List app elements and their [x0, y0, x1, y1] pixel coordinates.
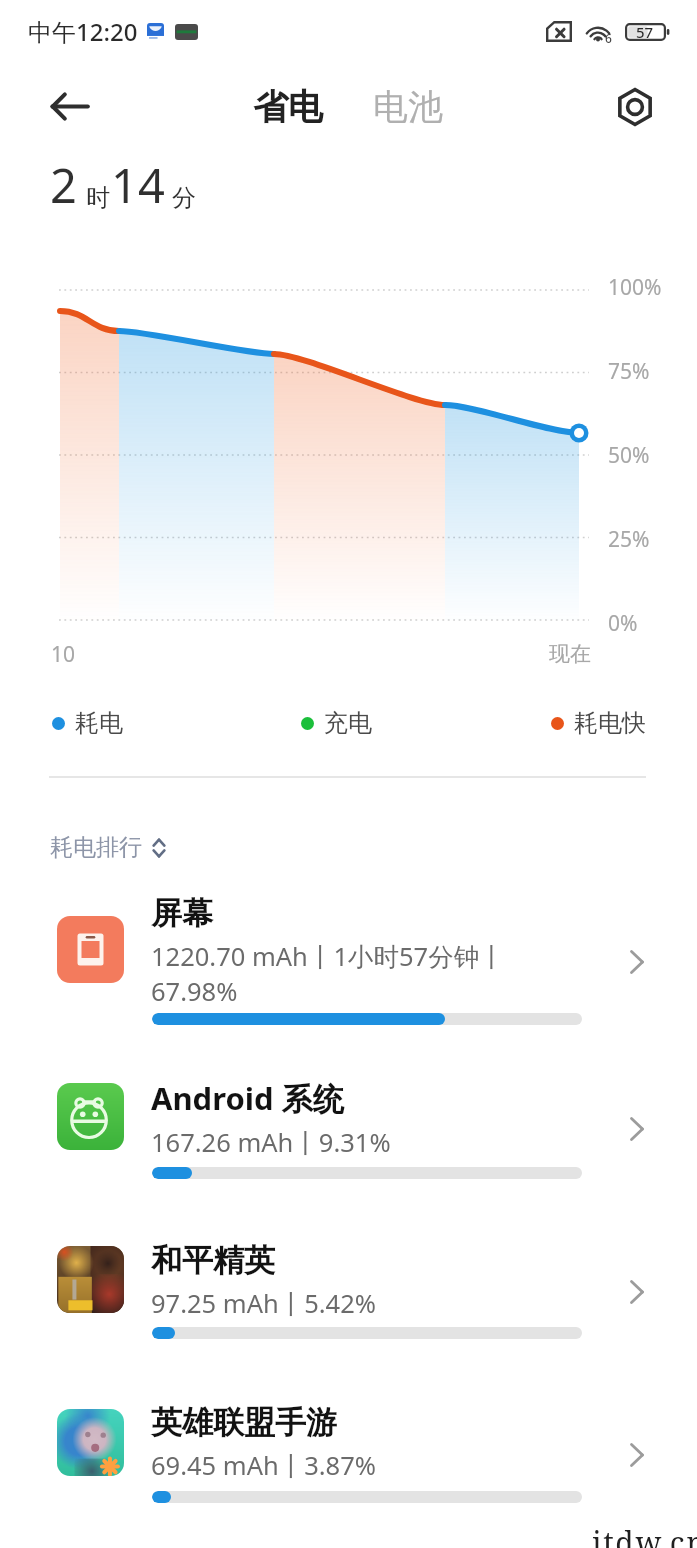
- staticText: 充电: [324, 708, 372, 738]
- button[interactable]: 电池: [362, 76, 454, 138]
- button[interactable]: 省电: [242, 76, 334, 138]
- button[interactable]: Details: [616, 1108, 658, 1150]
- staticText: 2: [50, 153, 77, 217]
- staticText: 97.25 mAh丨5.42%: [151, 1286, 376, 1321]
- staticText: itdw.cn: [592, 1522, 697, 1548]
- staticText: 时: [86, 183, 110, 213]
- staticText: 分: [172, 183, 196, 213]
- staticText: 167.26 mAh丨9.31%: [151, 1125, 391, 1160]
- staticText: 75%: [608, 357, 650, 386]
- staticText: 100%: [608, 273, 662, 302]
- staticText: Android 系统: [151, 1077, 344, 1119]
- button[interactable]: Details: [616, 1271, 658, 1313]
- button[interactable]: 耗电排行: [50, 833, 166, 862]
- button[interactable]: Back: [42, 79, 97, 134]
- button[interactable]: 充电: [301, 708, 372, 738]
- staticText: 电池: [373, 85, 443, 129]
- staticText: 14: [111, 153, 165, 217]
- staticText: 69.45 mAh丨3.87%: [151, 1448, 376, 1483]
- staticText: 耗电快: [574, 708, 646, 738]
- staticText: 耗电: [75, 708, 123, 738]
- staticText: 耗电排行: [50, 833, 142, 862]
- staticText: 英雄联盟手游: [151, 1403, 337, 1442]
- staticText: 1220.70 mAh丨1小时57分钟丨: [151, 939, 505, 974]
- staticText: 10: [51, 640, 76, 669]
- staticText: 25%: [608, 525, 650, 554]
- button[interactable]: Settings: [607, 79, 662, 134]
- staticText: 省电: [253, 85, 323, 129]
- staticText: 0%: [608, 609, 638, 638]
- staticText: 屏幕: [151, 894, 213, 933]
- staticText: 6: [605, 30, 612, 46]
- staticText: 57: [636, 22, 654, 42]
- button[interactable]: Details: [616, 1434, 658, 1476]
- button[interactable]: Details: [616, 941, 658, 983]
- staticText: 67.98%: [151, 974, 238, 1009]
- staticText: 和平精英: [151, 1241, 275, 1280]
- staticText: 50%: [608, 441, 650, 470]
- button[interactable]: 耗电: [52, 708, 123, 738]
- staticText: 现在: [549, 641, 591, 667]
- staticText: 中午12:20: [28, 15, 138, 48]
- button[interactable]: 耗电快: [551, 708, 646, 738]
